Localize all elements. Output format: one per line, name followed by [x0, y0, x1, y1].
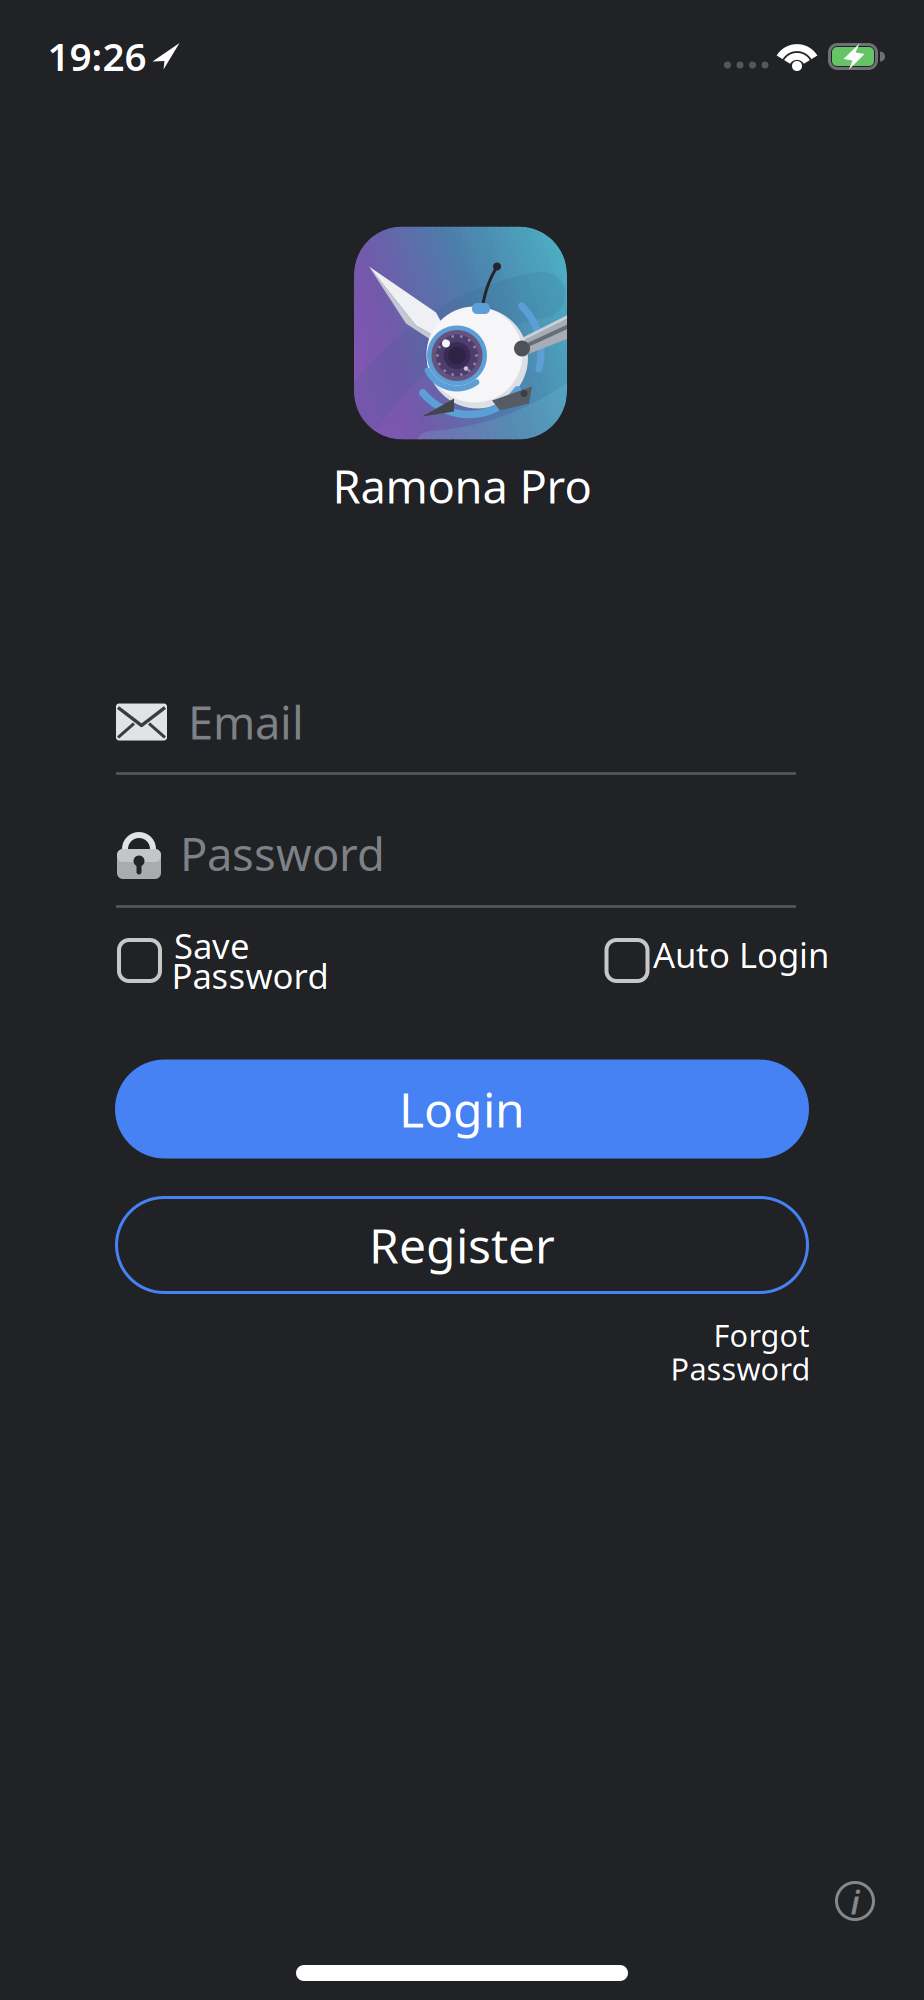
- staticText: 19:26: [47, 30, 146, 82]
- staticText: Login: [399, 1077, 525, 1141]
- button[interactable]: Login: [115, 1059, 809, 1158]
- staticText: Ramona Pro: [332, 456, 591, 516]
- button[interactable]: Password: [117, 821, 797, 885]
- staticText: Password: [670, 1348, 810, 1389]
- button[interactable]: Save: [117, 925, 367, 995]
- staticText: Register: [369, 1213, 555, 1277]
- staticText: i: [850, 1881, 859, 1923]
- button[interactable]: Register: [115, 1196, 809, 1294]
- button[interactable]: Email: [116, 691, 796, 753]
- staticText: Email: [188, 692, 304, 752]
- staticText: Password: [180, 823, 385, 884]
- staticText: Auto Login: [653, 931, 829, 977]
- staticText: Save: [174, 922, 250, 968]
- button[interactable]: Forgot: [608, 1316, 808, 1386]
- staticText: Forgot: [713, 1315, 809, 1355]
- button[interactable]: Auto Login: [604, 925, 854, 995]
- button[interactable]: Info: [835, 1881, 875, 1921]
- staticText: Password: [171, 952, 328, 998]
